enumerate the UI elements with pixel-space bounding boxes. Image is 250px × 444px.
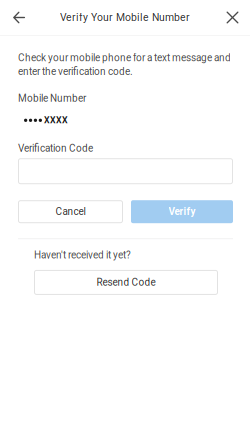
button[interactable]: Cancel	[18, 200, 123, 223]
staticText: enter the verification code.	[18, 66, 133, 77]
button[interactable]: Verify	[131, 200, 233, 223]
staticText: Verification Code	[18, 142, 93, 154]
staticText: Verify	[168, 206, 195, 217]
staticText: Mobile Number	[18, 92, 86, 104]
staticText: Cancel	[55, 206, 85, 217]
button[interactable]: Back	[0, 0, 38, 35]
button[interactable]: Resend Code	[34, 270, 218, 295]
staticText: Check your mobile phone for a text messa…	[18, 52, 231, 64]
staticText: Resend Code	[96, 276, 155, 288]
staticText: Haven't received it yet?	[34, 249, 131, 261]
staticText: Verify Your Mobile Number	[60, 11, 190, 24]
button[interactable]: Close	[215, 0, 250, 35]
staticText: XXXX	[44, 115, 68, 125]
